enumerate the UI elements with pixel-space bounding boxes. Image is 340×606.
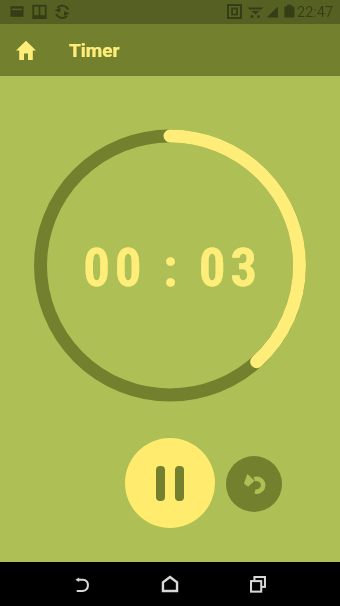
button[interactable]: Recent apps (214, 562, 302, 606)
staticText: 00 : 03 (83, 237, 262, 299)
button[interactable]: Pause (125, 438, 215, 528)
button[interactable]: Back (37, 562, 125, 606)
button[interactable]: Reset (226, 456, 282, 512)
button[interactable]: Home (9, 33, 43, 67)
button[interactable]: Home (126, 562, 214, 606)
staticText: 22:47 (297, 4, 334, 21)
staticText: Timer (69, 39, 120, 61)
